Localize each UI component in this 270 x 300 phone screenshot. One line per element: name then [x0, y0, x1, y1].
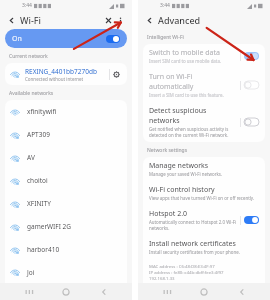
staticText: AV: [27, 153, 35, 162]
staticText: REXING_4401bb7270db: [25, 67, 97, 76]
staticText: Install network certificates: [149, 239, 236, 249]
button[interactable]: Recents: [18, 283, 38, 300]
staticText: Automatically connect to Hotspot 2.0 Wi-…: [149, 219, 237, 231]
staticText: Manage networks: [149, 161, 209, 171]
button[interactable]: Install network certificates: [143, 235, 265, 259]
button[interactable]: choitoi: [5, 169, 127, 192]
staticText: Detect suspicious networks: [149, 106, 237, 126]
staticText: Install security certificates from your …: [149, 249, 240, 255]
button[interactable]: Recents: [156, 283, 176, 300]
button[interactable]: gamerWIFI 2G: [5, 215, 127, 238]
button[interactable]: Home: [194, 283, 214, 300]
button[interactable]: Wi-Fi Direct: [102, 14, 114, 26]
staticText: gamerWIFI 2G: [27, 222, 72, 231]
staticText: XFINITY: [27, 199, 51, 208]
button[interactable]: Back: [232, 283, 252, 300]
button[interactable]: AV: [5, 146, 127, 169]
staticText: Get notified when suspicious activity is…: [149, 126, 229, 138]
staticText: Joi: [27, 268, 35, 277]
staticText: Network settings: [147, 147, 188, 154]
button[interactable]: APT309: [5, 123, 127, 146]
button[interactable]: Hotspot 2.0: [143, 205, 265, 235]
button[interactable]: Switch to mobile data: [143, 44, 265, 68]
staticText: IP address : fe80::c44b:dbff:fee3:4f97: [149, 269, 224, 275]
staticText: 3:44: [160, 2, 170, 9]
button[interactable]: Hotspot 2.0: [244, 216, 259, 224]
button[interactable]: Back: [6, 15, 17, 26]
button[interactable]: Wi-Fi control history: [143, 181, 265, 205]
button[interactable]: Back: [94, 283, 114, 300]
staticText: Insert a SIM card to use this feature.: [149, 92, 224, 98]
staticText: Wi-Fi: [20, 14, 41, 26]
button[interactable]: Turn on Wi-Fi automatically: [244, 81, 259, 89]
staticText: Connected without internet: [25, 76, 84, 82]
staticText: View apps that have turned Wi-Fi on or o…: [149, 195, 255, 201]
button[interactable]: Turn on Wi-Fi automatically: [143, 68, 265, 102]
staticText: choitoi: [27, 176, 48, 185]
staticText: 3:44: [22, 2, 32, 9]
button[interactable]: Switch to mobile data: [244, 52, 259, 60]
staticText: Turn on Wi-Fi automatically: [149, 72, 237, 92]
staticText: 192.168.1.33: [149, 275, 175, 281]
staticText: Manage your saved Wi-Fi networks.: [149, 171, 223, 177]
button[interactable]: Detect suspicious networks: [143, 102, 265, 142]
button[interactable]: Joi: [5, 261, 127, 283]
button[interactable]: xfinitywifi: [5, 100, 127, 123]
staticText: harbor410: [27, 245, 60, 254]
staticText: Available networks: [9, 90, 54, 97]
staticText: Current network: [9, 53, 48, 60]
button[interactable]: Network settings: [110, 68, 122, 80]
staticText: Insert SIM card to use mobile data.: [149, 58, 222, 64]
staticText: Wi-Fi control history: [149, 185, 215, 195]
button[interactable]: Back: [144, 15, 155, 26]
staticText: Hotspot 2.0: [149, 209, 188, 219]
staticText: MAC address : C6:48:D8:E3:4F:97: [149, 263, 215, 269]
button[interactable]: REXING_4401bb7270db: [5, 63, 127, 85]
staticText: Switch to mobile data: [149, 48, 220, 58]
button[interactable]: On: [5, 29, 127, 48]
button[interactable]: Home: [56, 283, 76, 300]
button[interactable]: Manage networks: [143, 157, 265, 181]
staticText: On: [12, 34, 22, 44]
staticText: Advanced: [158, 14, 201, 26]
staticText: Intelligent Wi-Fi: [147, 34, 184, 41]
button[interactable]: Detect suspicious networks: [244, 118, 259, 126]
staticText: APT309: [27, 130, 50, 139]
button[interactable]: harbor410: [5, 238, 127, 261]
staticText: xfinitywifi: [27, 107, 57, 116]
button[interactable]: More options: [114, 14, 126, 26]
button[interactable]: XFINITY: [5, 192, 127, 215]
